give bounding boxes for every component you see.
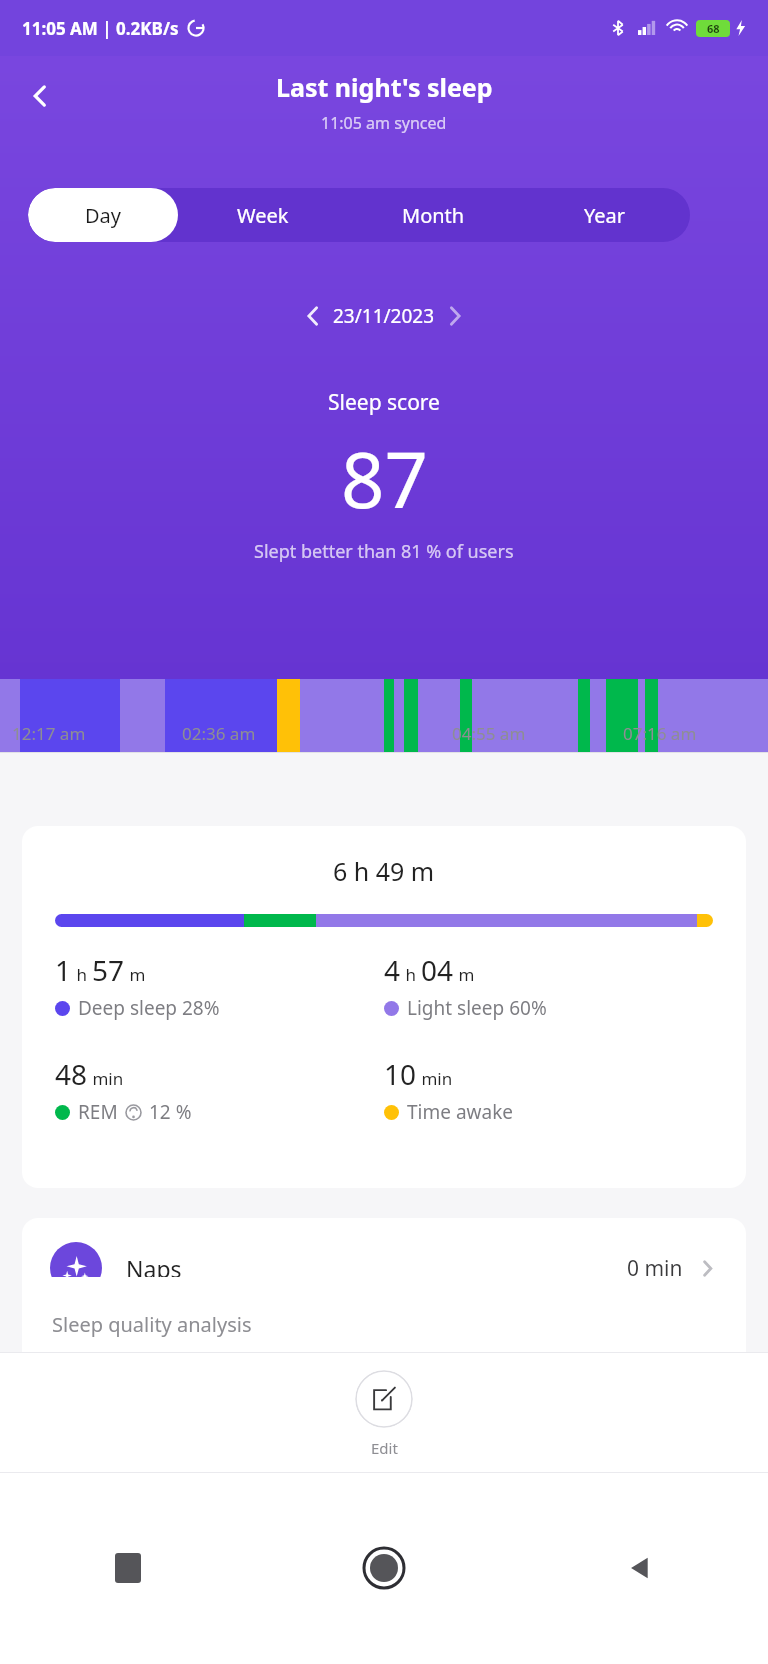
staticText: 87 — [341, 427, 428, 531]
staticText: 48 — [55, 1055, 88, 1093]
staticText: Week — [237, 202, 289, 229]
button[interactable]: Year — [519, 188, 690, 242]
staticText: Edit — [371, 1438, 398, 1458]
staticText: 23/11/2023 — [333, 303, 435, 329]
staticText: REM — [78, 1099, 118, 1125]
staticText: min — [417, 1067, 453, 1090]
staticText: h — [72, 963, 92, 986]
staticText: 12:17 am — [12, 722, 86, 745]
staticText: Sleep quality analysis — [52, 1311, 252, 1338]
button[interactable]: Sleep quality analysis — [22, 1277, 746, 1397]
staticText: 07:16 am — [623, 722, 697, 745]
staticText: Light sleep 60% — [407, 995, 547, 1021]
button[interactable]: Day — [28, 188, 178, 242]
button[interactable]: Back — [512, 1472, 768, 1664]
staticText: 6 h 49 m — [333, 854, 435, 888]
staticText: Sleep score — [328, 388, 440, 417]
staticText: 0 min — [627, 1254, 683, 1283]
staticText: 57 — [92, 951, 125, 989]
staticText: 04 — [421, 951, 454, 989]
staticText: Naps — [126, 1253, 182, 1284]
staticText: 02:36 am — [182, 722, 256, 745]
staticText: 11:05 AM | 0.2KB/s — [22, 17, 179, 40]
staticText: Month — [402, 202, 465, 229]
staticText: Slept better than 81 % of users — [254, 539, 514, 564]
button[interactable]: Next day — [435, 296, 475, 336]
staticText: Day — [85, 202, 122, 229]
button[interactable]: Naps — [22, 1218, 746, 1318]
staticText: Last night's sleep — [276, 70, 493, 104]
button[interactable]: Back — [16, 72, 64, 120]
button[interactable]: Month — [348, 188, 519, 242]
button[interactable]: Previous day — [293, 296, 333, 336]
staticText: m — [454, 963, 475, 986]
staticText: 1 — [55, 951, 72, 989]
staticText: 11:05 am synced — [321, 112, 447, 134]
staticText: 12 % — [149, 1099, 192, 1125]
button[interactable]: Recent apps — [0, 1472, 256, 1664]
staticText: h — [401, 963, 421, 986]
staticText: Time awake — [407, 1099, 514, 1125]
staticText: 68 — [707, 21, 720, 36]
staticText: min — [88, 1067, 124, 1090]
button[interactable]: Week — [178, 188, 348, 242]
staticText: 4 — [384, 951, 401, 989]
staticText: 10 — [384, 1055, 417, 1093]
staticText: Deep sleep 28% — [78, 995, 220, 1021]
staticText: 04:55 am — [452, 722, 526, 745]
staticText: m — [125, 963, 146, 986]
button[interactable]: Home — [256, 1472, 512, 1664]
staticText: Year — [584, 202, 626, 229]
button[interactable]: Edit — [355, 1370, 413, 1428]
